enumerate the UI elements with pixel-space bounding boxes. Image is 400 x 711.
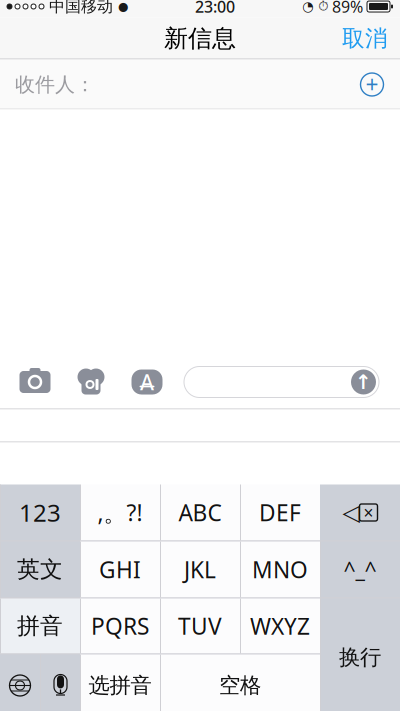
- staticText: 选拼音: [88, 672, 151, 699]
- button[interactable]: 添加联系人: [352, 64, 392, 104]
- button[interactable]: ^_^: [320, 541, 400, 597]
- button[interactable]: 英文: [0, 541, 80, 597]
- staticText: ↑: [355, 371, 372, 393]
- button[interactable]: 切换键盘: [0, 654, 40, 711]
- staticText: 取消: [342, 25, 388, 52]
- staticText: ^_^: [343, 555, 376, 584]
- button[interactable]: JKL: [160, 541, 240, 597]
- button[interactable]: 拼音: [0, 598, 80, 653]
- staticText: 英文: [17, 556, 63, 583]
- button[interactable]: 取消: [330, 17, 400, 60]
- button[interactable]: 数码点触: [68, 359, 114, 405]
- staticText: MNO: [252, 554, 308, 584]
- staticText: ×: [363, 501, 373, 524]
- staticText: 空格: [219, 672, 261, 699]
- staticText: 23:00: [195, 0, 235, 17]
- button[interactable]: ABC: [160, 484, 240, 540]
- button[interactable]: 删除: [320, 484, 400, 540]
- button[interactable]: PQRS: [80, 598, 160, 653]
- staticText: 收件人：: [15, 72, 95, 97]
- button[interactable]: 应用程序: [124, 359, 170, 405]
- staticText: 89%: [332, 0, 363, 17]
- button[interactable]: WXYZ: [240, 598, 320, 653]
- staticText: 123: [19, 497, 61, 528]
- staticText: 中国移动: [49, 0, 113, 16]
- button[interactable]: 空格: [160, 654, 320, 711]
- staticText: ABC: [178, 497, 221, 527]
- staticText: ◁: [342, 500, 359, 525]
- staticText: TUV: [178, 611, 222, 641]
- staticText: ●: [118, 0, 128, 13]
- button[interactable]: 选拼音: [80, 654, 160, 711]
- button[interactable]: DEF: [240, 484, 320, 540]
- button[interactable]: TUV: [160, 598, 240, 653]
- staticText: 拼音: [17, 612, 63, 640]
- button[interactable]: ,。?!: [80, 484, 160, 540]
- button[interactable]: ↑: [184, 365, 379, 398]
- staticText: +: [365, 69, 378, 99]
- button[interactable]: 换行: [320, 598, 400, 711]
- button[interactable]: MNO: [240, 541, 320, 597]
- staticText: PQRS: [91, 611, 149, 641]
- staticText: 新信息: [164, 24, 236, 53]
- button[interactable]: GHI: [80, 541, 160, 597]
- staticText: JKL: [184, 554, 216, 584]
- button[interactable]: 语音输入: [41, 654, 80, 711]
- staticText: ⏱: [318, 0, 328, 13]
- staticText: ,。?!: [97, 497, 142, 528]
- button[interactable]: 123: [0, 484, 80, 540]
- staticText: WXYZ: [250, 611, 310, 641]
- staticText: ◔: [302, 0, 314, 14]
- button[interactable]: 相机: [12, 359, 58, 405]
- staticText: GHI: [99, 554, 141, 584]
- staticText: 换行: [339, 644, 381, 671]
- staticText: A: [140, 368, 154, 396]
- staticText: DEF: [259, 497, 301, 527]
